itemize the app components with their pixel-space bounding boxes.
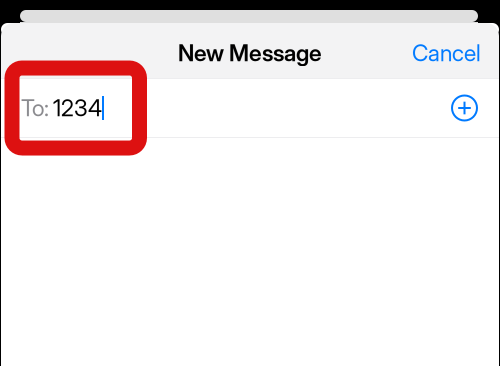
staticText: To: [21, 94, 49, 122]
button[interactable]: Cancel [403, 30, 490, 76]
staticText: New Message [178, 39, 322, 67]
button[interactable]: Add contact [452, 95, 477, 120]
staticText: 1234 [53, 94, 102, 122]
staticText: Cancel [412, 39, 481, 67]
